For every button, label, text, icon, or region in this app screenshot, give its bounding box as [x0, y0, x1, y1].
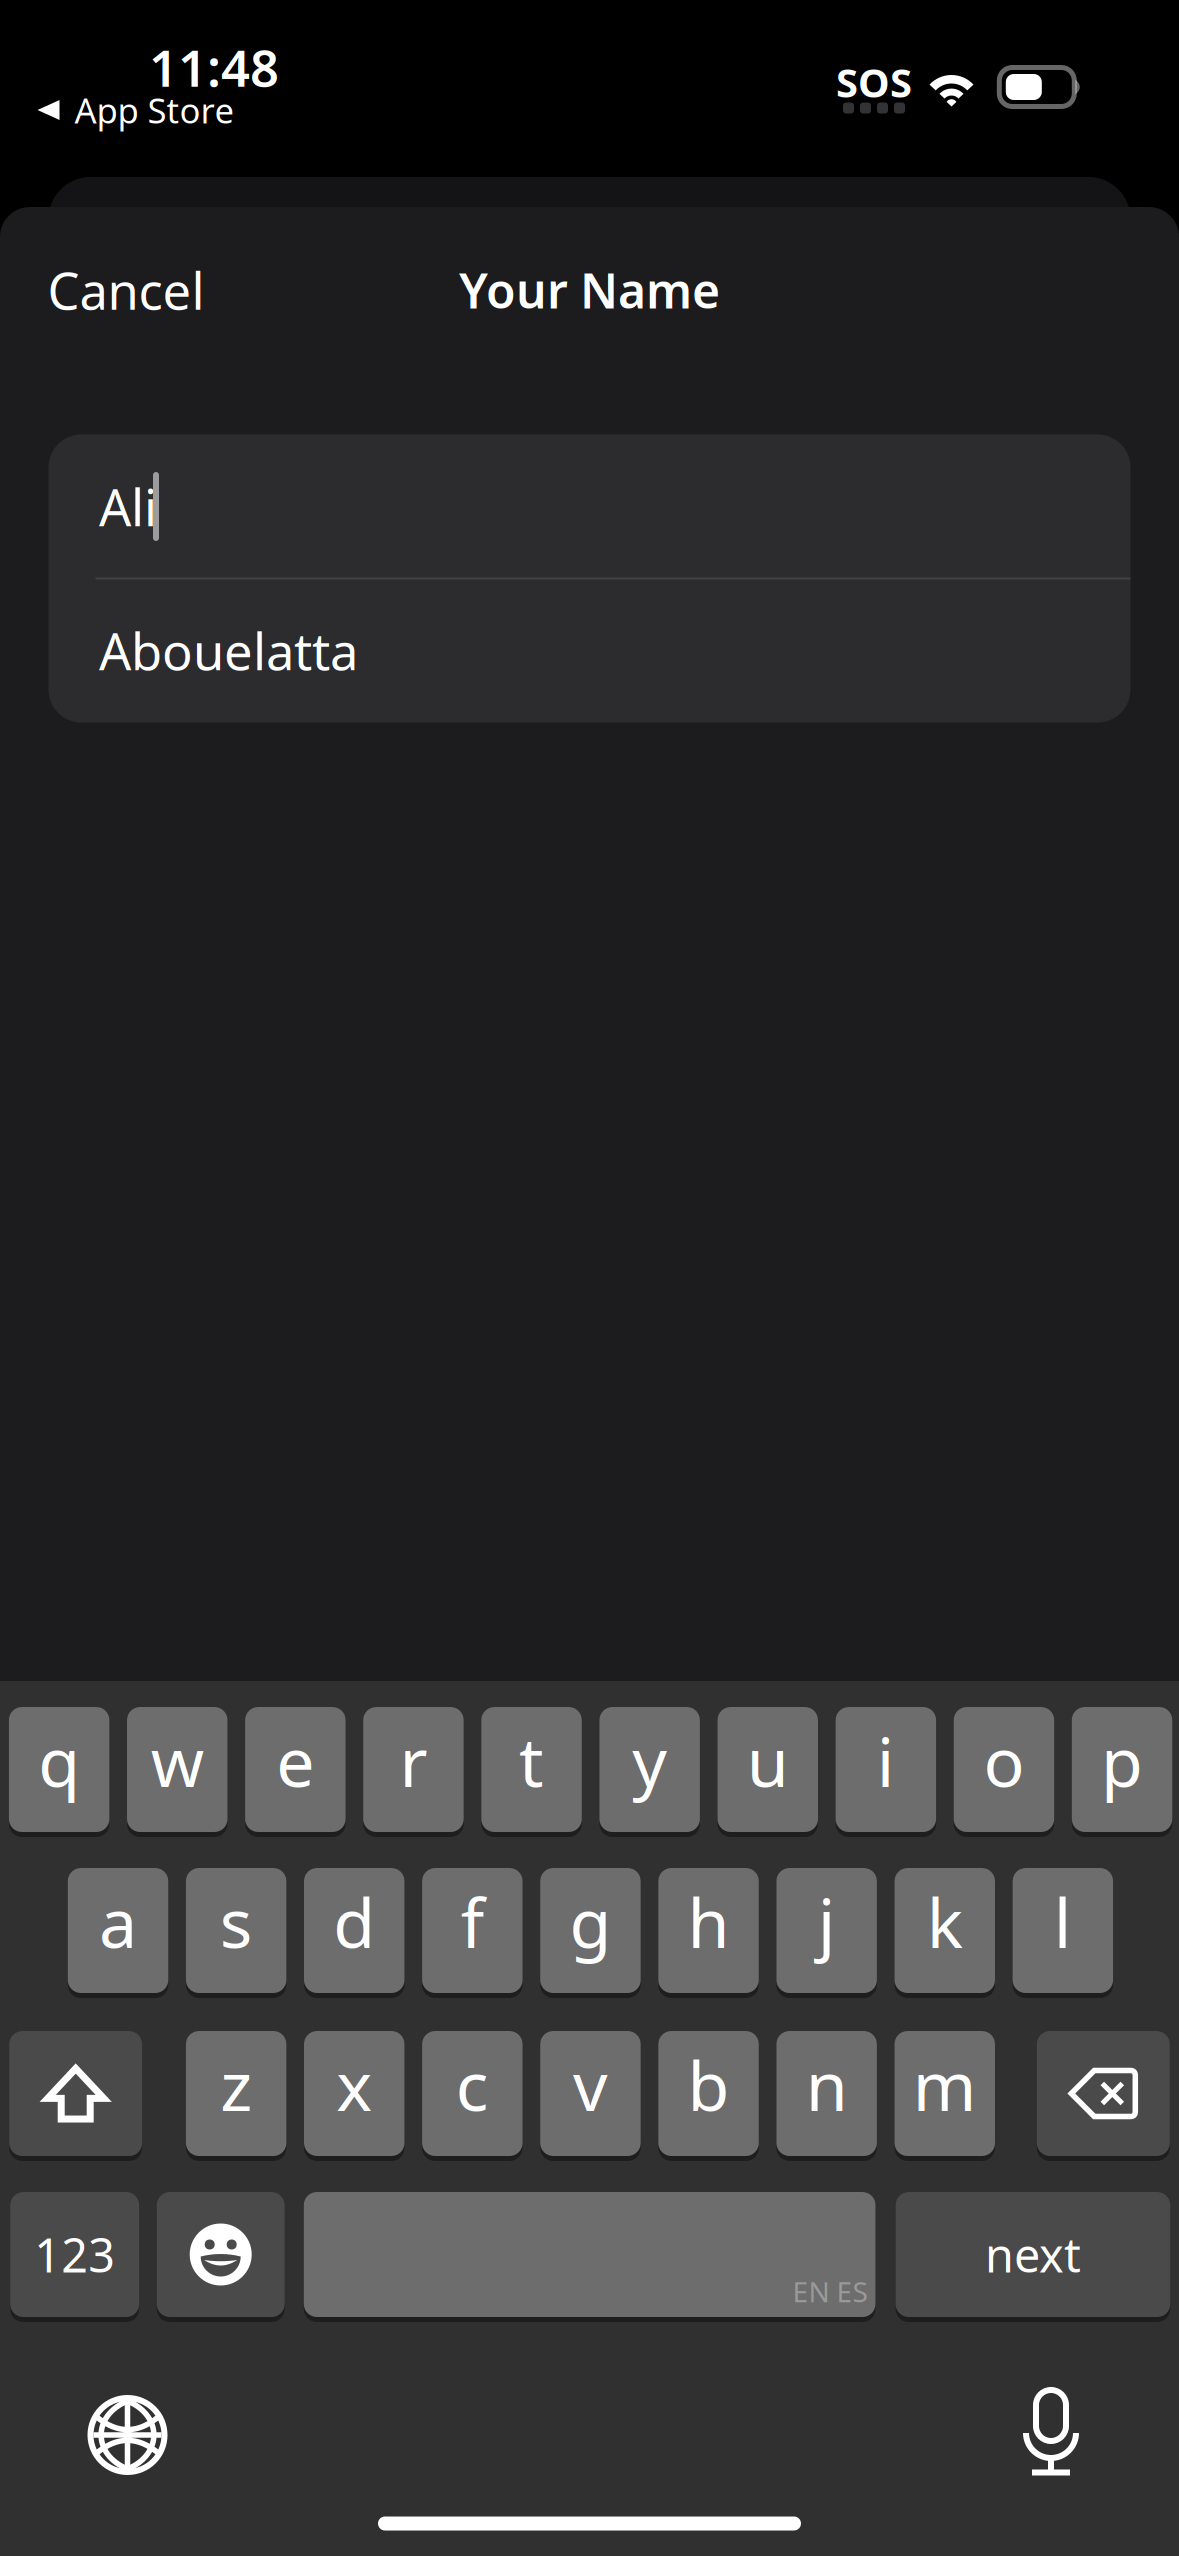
staticText: g — [569, 1876, 611, 1967]
button[interactable]: k — [894, 1865, 995, 1995]
button[interactable]: Space — [304, 2189, 875, 2319]
button[interactable]: g — [540, 1865, 641, 1995]
button[interactable]: p — [1072, 1704, 1172, 1834]
button[interactable]: j — [776, 1865, 877, 1995]
button[interactable]: Next — [896, 2189, 1170, 2319]
staticText: b — [687, 2039, 729, 2130]
staticText: next — [985, 2223, 1081, 2285]
button[interactable]: w — [127, 1704, 227, 1834]
button[interactable]: z — [186, 2028, 286, 2158]
staticText: EN ES — [792, 2273, 867, 2310]
button[interactable]: Emoji — [157, 2189, 285, 2319]
button[interactable]: e — [245, 1704, 346, 1834]
staticText: s — [220, 1876, 253, 1967]
staticText: l — [1054, 1876, 1072, 1967]
staticText: f — [461, 1876, 484, 1967]
staticText: p — [1101, 1715, 1143, 1806]
button[interactable]: u — [717, 1704, 818, 1834]
button[interactable]: h — [658, 1865, 759, 1995]
button[interactable]: Dictation — [1022, 2390, 1080, 2476]
button[interactable]: r — [363, 1704, 464, 1834]
button[interactable]: Back to App Store — [29, 77, 242, 143]
button[interactable]: l — [1013, 1865, 1113, 1995]
staticText: i — [877, 1715, 895, 1806]
button[interactable]: d — [304, 1865, 404, 1995]
staticText: Your Name — [459, 258, 720, 322]
button[interactable]: Cancel — [23, 234, 228, 346]
staticText: h — [687, 1876, 729, 1967]
staticText: n — [806, 2039, 848, 2130]
button[interactable]: s — [186, 1865, 286, 1995]
staticText: a — [99, 1876, 137, 1967]
button[interactable]: y — [599, 1704, 700, 1834]
staticText: Cancel — [47, 256, 204, 324]
staticText: q — [38, 1715, 80, 1806]
button[interactable]: Shift — [9, 2028, 142, 2158]
staticText: v — [573, 2039, 608, 2130]
button[interactable]: m — [894, 2028, 995, 2158]
button[interactable]: Last name — [48, 578, 1130, 722]
button[interactable]: v — [540, 2028, 641, 2158]
staticText: o — [983, 1715, 1024, 1806]
staticText: t — [519, 1715, 544, 1806]
button[interactable]: o — [954, 1704, 1054, 1834]
button[interactable]: x — [304, 2028, 404, 2158]
staticText: e — [276, 1715, 314, 1806]
button[interactable]: c — [422, 2028, 523, 2158]
staticText: Ali — [99, 473, 157, 540]
staticText: 123 — [34, 2223, 115, 2285]
button[interactable]: Next keyboard — [87, 2395, 167, 2475]
button[interactable]: a — [68, 1865, 168, 1995]
staticText: Abouelatta — [99, 617, 358, 684]
button[interactable]: First name — [48, 434, 1130, 578]
staticText: SOS — [836, 55, 912, 108]
button[interactable]: Delete — [1037, 2028, 1170, 2158]
staticText: 11:48 — [149, 33, 279, 101]
staticText: w — [151, 1715, 204, 1806]
staticText: App Store — [74, 87, 234, 133]
staticText: y — [632, 1715, 667, 1806]
staticText: d — [333, 1876, 375, 1967]
button[interactable]: f — [422, 1865, 523, 1995]
button[interactable]: q — [9, 1704, 109, 1834]
staticText: x — [336, 2039, 372, 2130]
staticText: j — [818, 1876, 836, 1967]
button[interactable]: i — [836, 1704, 936, 1834]
staticText: r — [399, 1715, 427, 1806]
staticText: m — [913, 2039, 977, 2130]
button[interactable]: b — [658, 2028, 759, 2158]
staticText: k — [927, 1876, 963, 1967]
button[interactable]: t — [481, 1704, 582, 1834]
button[interactable]: Numbers and symbols — [10, 2189, 139, 2319]
button[interactable]: n — [776, 2028, 877, 2158]
staticText: u — [747, 1715, 789, 1806]
staticText: c — [456, 2039, 489, 2130]
staticText: z — [220, 2039, 252, 2130]
